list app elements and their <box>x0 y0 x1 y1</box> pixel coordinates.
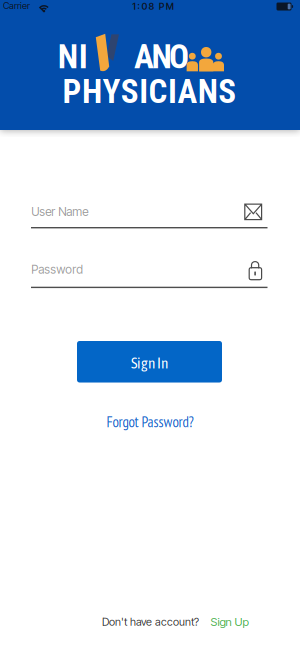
button[interactable]: Sign Up <box>210 615 248 629</box>
staticText: Carrier <box>3 0 30 11</box>
staticText: Sign In <box>131 354 168 372</box>
staticText: 1:08 PM <box>132 1 174 12</box>
button[interactable]: User Name <box>31 203 267 228</box>
staticText: NI <box>58 37 88 76</box>
button[interactable]: Sign In <box>77 341 222 382</box>
staticText: Don't have account? <box>102 615 199 628</box>
staticText: User Name <box>31 204 88 219</box>
staticText: PHYSICIANS <box>63 72 236 111</box>
button[interactable]: Password <box>31 261 267 288</box>
staticText: ANO <box>134 37 189 76</box>
staticText: Password <box>31 262 83 277</box>
staticText: Forgot Password? <box>106 412 193 431</box>
button[interactable]: Forgot Password? <box>106 412 193 431</box>
staticText: Sign Up <box>210 615 248 629</box>
